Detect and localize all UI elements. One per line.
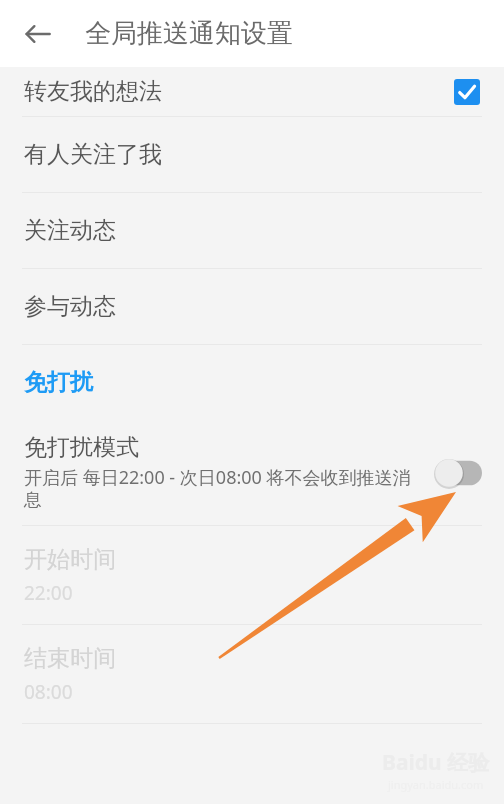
button[interactable]: Back — [12, 8, 64, 60]
button[interactable]: 转友我的想法 — [0, 67, 504, 116]
button[interactable]: 参与动态 — [0, 269, 504, 344]
staticText: 关注动态 — [24, 216, 116, 245]
button[interactable]: 免打扰模式 — [0, 420, 504, 525]
button[interactable]: 结束时间 — [0, 625, 504, 723]
staticText: 有人关注了我 — [24, 140, 162, 169]
button[interactable]: 有人关注了我 — [0, 117, 504, 192]
staticText: 全局推送通知设置 — [85, 17, 293, 50]
staticText: 结束时间 — [24, 644, 116, 673]
staticText: 参与动态 — [24, 292, 116, 321]
button[interactable]: 关注动态 — [0, 193, 504, 268]
button[interactable]: Do not disturb toggle — [434, 458, 482, 488]
staticText: 开启后 每日22:00 - 次日08:00 将不会收到推送消息 — [24, 465, 420, 512]
button[interactable]: 开始时间 — [0, 526, 504, 624]
staticText: 22:00 — [24, 580, 73, 606]
staticText: 免打扰模式 — [24, 433, 139, 462]
staticText: 开始时间 — [24, 545, 116, 574]
staticText: 免打扰 — [24, 368, 93, 397]
staticText: 转友我的想法 — [24, 77, 162, 106]
staticText: Baidu 经验 — [382, 748, 490, 777]
staticText: 08:00 — [24, 679, 73, 705]
